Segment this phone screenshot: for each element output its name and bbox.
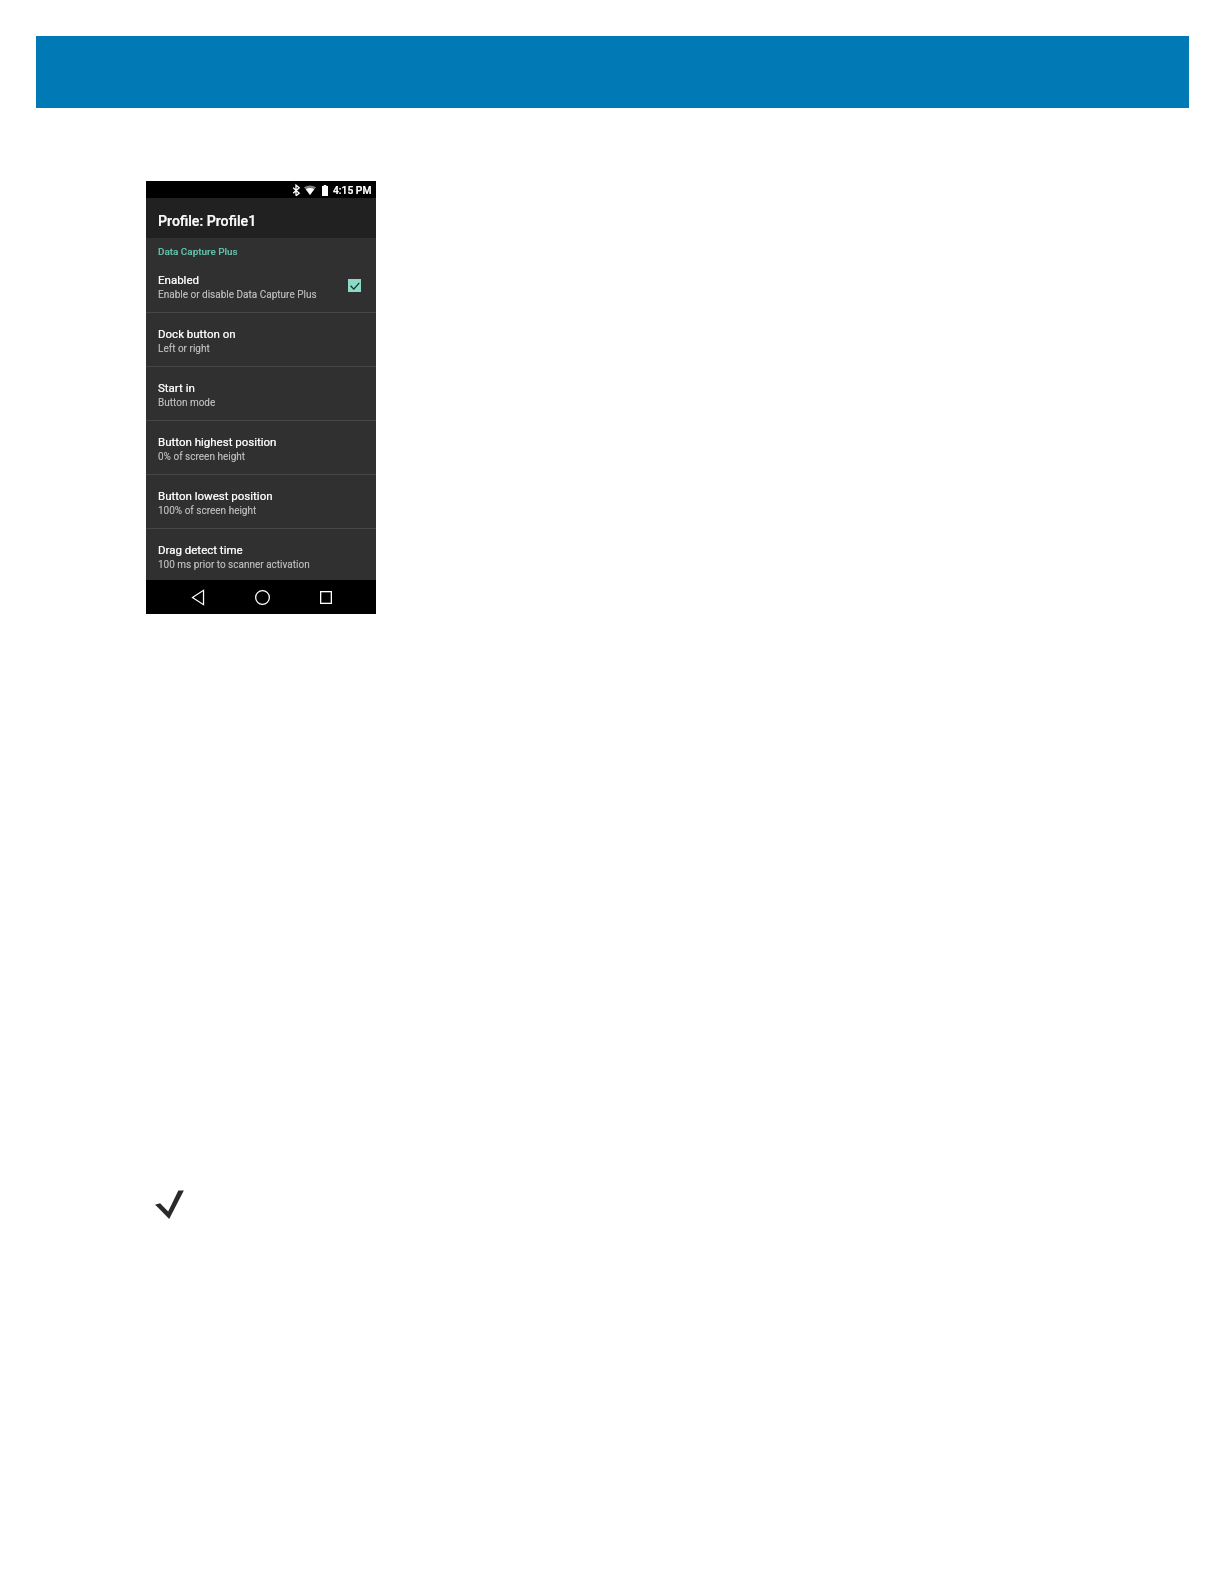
staticText: 100 ms prior to scanner activation	[158, 559, 310, 571]
button[interactable]: Profile: Profile1	[146, 198, 376, 238]
button[interactable]: Dock button on	[146, 320, 376, 366]
button[interactable]: Enabled	[146, 266, 376, 312]
staticText: Drag detect time	[158, 543, 243, 556]
staticText: Dock button on	[158, 327, 236, 340]
staticText: Button lowest position	[158, 489, 273, 502]
button[interactable]: Enabled toggle	[348, 279, 361, 292]
staticText: Enabled	[158, 273, 199, 286]
staticText: Data Capture Plus	[158, 246, 238, 258]
staticText: Start in	[158, 381, 195, 394]
staticText: Enable or disable Data Capture Plus	[158, 289, 317, 301]
button[interactable]: Button lowest position	[146, 482, 376, 528]
staticText: Profile: Profile1	[158, 213, 257, 230]
button[interactable]: Recent apps	[312, 583, 340, 611]
staticText: 0% of screen height	[158, 451, 246, 463]
button[interactable]: Start in	[146, 374, 376, 420]
staticText: Button mode	[158, 397, 216, 409]
button[interactable]: Button highest position	[146, 428, 376, 474]
button[interactable]: Back	[184, 583, 212, 611]
staticText: 100% of screen height	[158, 505, 257, 517]
staticText: Button highest position	[158, 435, 277, 448]
staticText: Left or right	[158, 343, 210, 355]
staticText: 4:15 PM	[333, 184, 372, 196]
button[interactable]: Drag detect time	[146, 536, 376, 582]
button[interactable]: Home	[248, 583, 276, 611]
